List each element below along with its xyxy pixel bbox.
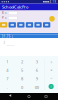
staticText: 8 <box>21 76 23 81</box>
button[interactable]: 31.75 <box>0 35 12 38</box>
staticText: 0 <box>21 85 23 90</box>
staticText: tap to enter a value <box>14 9 26 11</box>
button[interactable]: 00 <box>29 83 44 92</box>
staticText: Y = <box>2 16 7 20</box>
button[interactable]: 9 <box>29 74 44 83</box>
button[interactable]: Fraction <box>9 22 16 27</box>
button[interactable]: 3 <box>29 57 44 66</box>
staticText: 3 <box>36 59 38 64</box>
staticText: × <box>50 67 52 73</box>
button[interactable]: Back <box>7 93 16 100</box>
staticText: 4 <box>3 41 5 44</box>
button[interactable]: 8 <box>15 74 29 83</box>
button[interactable]: Home <box>24 93 33 100</box>
button[interactable]: 6 <box>29 66 44 74</box>
button[interactable]: Keyboard <box>34 22 42 27</box>
button[interactable]: More <box>43 22 50 27</box>
staticText: 9 <box>36 76 38 81</box>
button[interactable]: − <box>44 74 58 82</box>
button[interactable]: Power <box>17 22 24 27</box>
staticText: ÷ <box>50 59 52 65</box>
staticText: 7 <box>6 76 8 81</box>
staticText: SchoolCalcPro <box>2 4 28 10</box>
staticText: 1 <box>6 59 8 64</box>
button[interactable]: Star <box>0 22 7 27</box>
staticText: 4:18 <box>49 0 56 3</box>
button[interactable]: × <box>44 66 58 74</box>
button[interactable]: ÷ <box>44 58 58 66</box>
button[interactable]: Recents <box>41 93 50 100</box>
button[interactable]: Root <box>26 22 33 27</box>
button[interactable]: 2 <box>15 57 29 66</box>
button[interactable]: Solve <box>49 16 55 22</box>
button[interactable]: Equals <box>44 82 58 91</box>
button[interactable]: 7 <box>0 74 15 83</box>
staticText: 4 <box>6 67 8 73</box>
staticText: 6 <box>36 67 38 73</box>
button[interactable] <box>8 11 17 15</box>
staticText: = <box>50 85 52 88</box>
staticText: 00 <box>35 85 39 90</box>
button[interactable]: 5 <box>15 66 29 74</box>
staticText: X = <box>2 11 7 15</box>
button[interactable]: 4 <box>0 66 15 74</box>
button[interactable]: 1 <box>0 57 15 66</box>
staticText: . <box>7 85 8 90</box>
staticText: 5 <box>21 67 23 73</box>
staticText: − <box>50 75 52 81</box>
button[interactable] <box>8 16 17 20</box>
button[interactable]: 0 <box>15 83 29 92</box>
staticText: 31.75 <box>2 35 11 38</box>
staticText: 2 <box>21 59 23 64</box>
